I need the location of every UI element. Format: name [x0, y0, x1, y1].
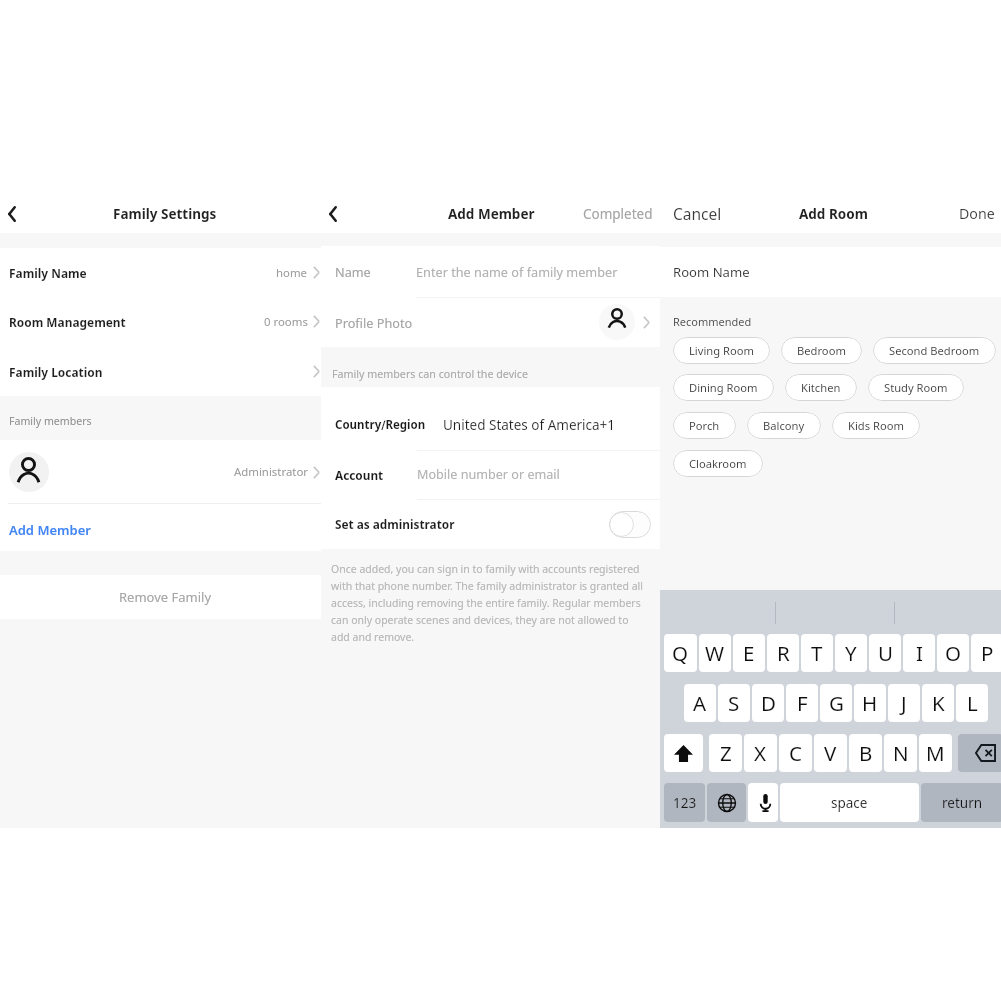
button[interactable]: Name	[321, 246, 660, 297]
staticText: Enter the name of family member	[416, 263, 618, 280]
staticText: Porch	[689, 418, 720, 433]
button[interactable]: Back	[321, 192, 351, 222]
staticText: 123	[673, 794, 697, 812]
button[interactable]: Voice input	[748, 783, 778, 822]
staticText: Country∕Region	[335, 417, 426, 433]
button[interactable]: Account	[321, 450, 660, 499]
button[interactable]: Backspace	[958, 734, 1001, 772]
button[interactable]: W	[699, 634, 731, 672]
staticText: Family Name	[9, 265, 87, 281]
button[interactable]: Profile Photo	[321, 297, 660, 347]
button[interactable]: H	[854, 684, 886, 722]
staticText: Name	[335, 263, 416, 280]
staticText: P	[981, 639, 994, 667]
staticText: Bedroom	[797, 343, 846, 358]
button[interactable]: D	[752, 684, 784, 722]
staticText: C	[789, 739, 802, 767]
button[interactable]: 123	[664, 783, 705, 822]
button[interactable]: Set as administrator toggle	[609, 511, 651, 538]
button[interactable]: Set as administrator	[321, 499, 660, 549]
button[interactable]: B	[849, 734, 882, 772]
button[interactable]: U	[869, 634, 901, 672]
staticText: Kitchen	[801, 380, 841, 395]
button[interactable]: A	[684, 684, 716, 722]
button[interactable]: X	[744, 734, 777, 772]
button[interactable]: G	[820, 684, 852, 722]
button[interactable]: Family Name	[0, 248, 321, 297]
button[interactable]: P	[971, 634, 1001, 672]
staticText: Set as administrator	[335, 516, 455, 532]
staticText: Administrator	[234, 464, 308, 480]
button[interactable]: Room Name	[660, 247, 1001, 297]
staticText: J	[901, 689, 907, 717]
button[interactable]: C	[779, 734, 812, 772]
staticText: Mobile number or email	[417, 466, 560, 483]
button[interactable]: M	[919, 734, 952, 772]
staticText: Y	[845, 639, 857, 667]
button[interactable]: Add Member	[0, 504, 321, 551]
button[interactable]: V	[814, 734, 847, 772]
button[interactable]: Kitchen	[785, 374, 857, 401]
button[interactable]: return	[921, 783, 1001, 822]
button[interactable]: E	[733, 634, 765, 672]
staticText: Add Member	[9, 521, 91, 539]
button[interactable]: Dining Room	[673, 374, 774, 401]
staticText: United States of America+1	[443, 416, 616, 434]
staticText: D	[761, 689, 776, 717]
staticText: G	[829, 689, 844, 717]
button[interactable]: Change keyboard	[707, 783, 746, 822]
staticText: return	[942, 794, 983, 812]
button[interactable]: Room Management	[0, 297, 321, 346]
staticText: Family Location	[9, 364, 103, 380]
staticText: Add Member	[448, 205, 535, 223]
button[interactable]: Remove Family	[0, 575, 321, 619]
button[interactable]: Completed	[576, 205, 660, 223]
button[interactable]: Cloakroom	[673, 450, 763, 477]
button[interactable]: Shift	[664, 734, 703, 772]
button[interactable]: Q	[664, 634, 697, 672]
staticText: L	[967, 689, 978, 717]
button[interactable]: J	[888, 684, 920, 722]
staticText: V	[824, 739, 837, 767]
staticText: Add Room	[799, 205, 868, 223]
button[interactable]: Administrator	[0, 440, 321, 504]
button[interactable]: R	[767, 634, 799, 672]
button[interactable]: T	[801, 634, 833, 672]
button[interactable]: L	[956, 684, 988, 722]
staticText: Recommended	[673, 314, 752, 329]
staticText: I	[916, 639, 923, 667]
button[interactable]: Done	[959, 204, 1001, 223]
button[interactable]: Balcony	[747, 412, 821, 439]
staticText: F	[797, 689, 808, 717]
button[interactable]: Z	[709, 734, 742, 772]
button[interactable]: Living Room	[673, 337, 770, 364]
button[interactable]: Second Bedroom	[873, 337, 996, 364]
staticText: K	[932, 689, 945, 717]
button[interactable]: O	[937, 634, 969, 672]
staticText: U	[878, 639, 893, 667]
staticText: Remove Family	[119, 588, 212, 606]
button[interactable]: Back	[0, 192, 30, 222]
button[interactable]: Porch	[673, 412, 736, 439]
button[interactable]: F	[786, 684, 818, 722]
button[interactable]: Y	[835, 634, 867, 672]
button[interactable]: Country∕Region	[321, 387, 660, 450]
staticText: Second Bedroom	[889, 343, 980, 358]
staticText: X	[754, 739, 767, 767]
staticText: Room Name	[673, 263, 750, 281]
staticText: M	[926, 739, 945, 767]
button[interactable]: Study Room	[868, 374, 964, 401]
button[interactable]: N	[884, 734, 917, 772]
button[interactable]: space	[780, 783, 919, 822]
staticText: N	[893, 739, 909, 767]
staticText: O	[945, 639, 962, 667]
button[interactable]: Family Location	[0, 347, 321, 396]
button[interactable]: S	[718, 684, 750, 722]
button[interactable]: Kids Room	[832, 412, 920, 439]
button[interactable]: Cancel	[660, 203, 730, 224]
button[interactable]: I	[903, 634, 935, 672]
staticText: A	[693, 689, 707, 717]
staticText: Completed	[583, 205, 653, 223]
button[interactable]: Bedroom	[781, 337, 862, 364]
button[interactable]: K	[922, 684, 954, 722]
